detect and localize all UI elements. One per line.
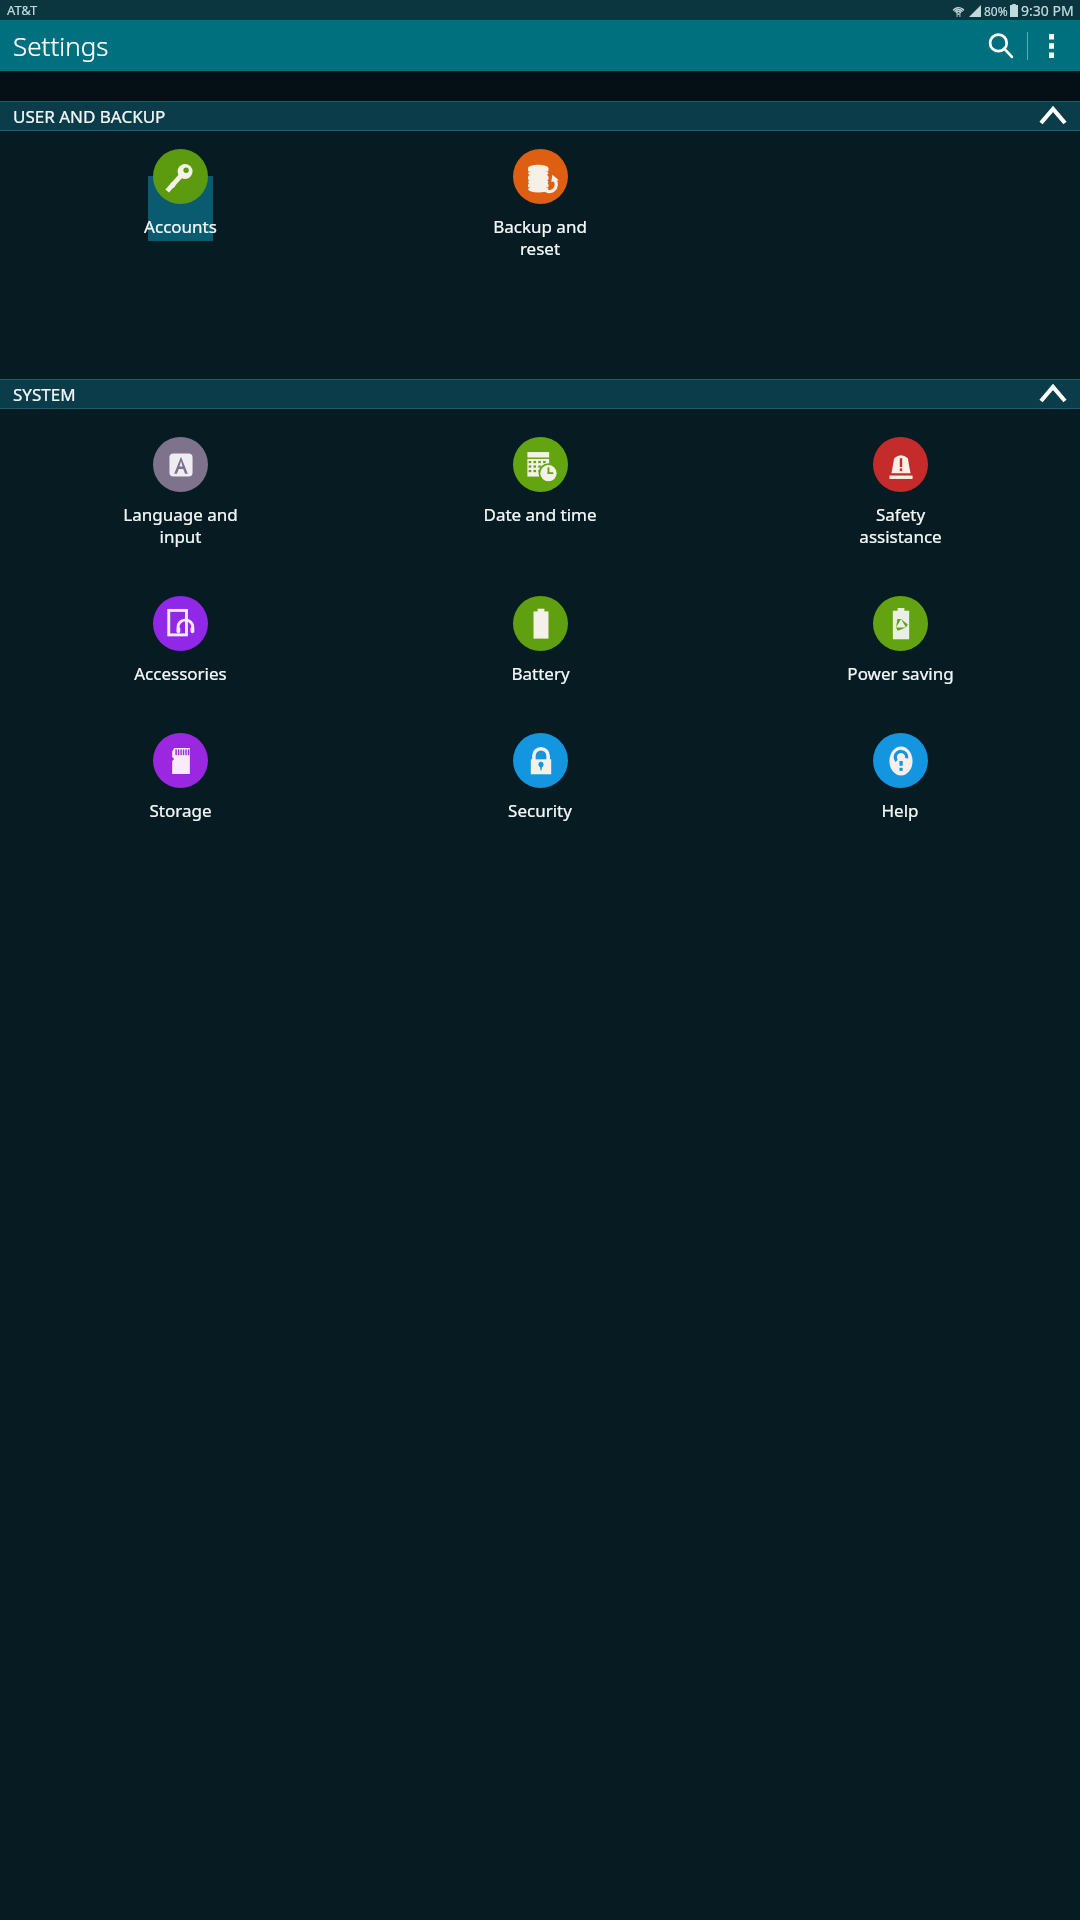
staticText: Settings	[13, 28, 109, 63]
button[interactable]: Date and time	[360, 419, 720, 526]
staticText: Battery	[511, 662, 570, 685]
staticText: SYSTEM	[13, 383, 76, 406]
staticText: Safety assistance	[859, 503, 942, 548]
button[interactable]: More options	[1028, 23, 1074, 69]
staticText: Accessories	[134, 662, 227, 685]
staticText: USER AND BACKUP	[13, 105, 166, 128]
button[interactable]: Search	[975, 20, 1027, 71]
button[interactable]: Accounts	[0, 131, 360, 238]
button[interactable]: Language and input	[0, 419, 360, 548]
staticText: Storage	[149, 799, 212, 822]
button[interactable]: Battery	[360, 578, 720, 685]
button[interactable]: Security	[360, 715, 720, 822]
staticText: 9:30 PM	[1021, 1, 1074, 20]
button[interactable]: Power saving	[720, 578, 1080, 685]
button[interactable]: Storage	[0, 715, 360, 822]
button[interactable]: Help	[720, 715, 1080, 822]
staticText: Power saving	[847, 662, 954, 685]
staticText: Language and input	[123, 503, 238, 548]
staticText: Date and time	[483, 503, 597, 526]
button[interactable]: Backup and reset	[360, 131, 720, 260]
button[interactable]: SYSTEM	[0, 380, 1080, 408]
button[interactable]: USER AND BACKUP	[0, 102, 1080, 130]
other: Collapse	[1040, 103, 1066, 129]
staticText: Security	[508, 799, 572, 822]
staticText: Help	[881, 799, 919, 822]
button[interactable]: Accessories	[0, 578, 360, 685]
button[interactable]: Safety assistance	[720, 419, 1080, 548]
staticText: AT&T	[7, 1, 38, 19]
staticText: Backup and reset	[493, 215, 587, 260]
staticText: Accounts	[144, 215, 217, 238]
other: Collapse	[1040, 381, 1066, 407]
staticText: 80%	[984, 3, 1008, 19]
